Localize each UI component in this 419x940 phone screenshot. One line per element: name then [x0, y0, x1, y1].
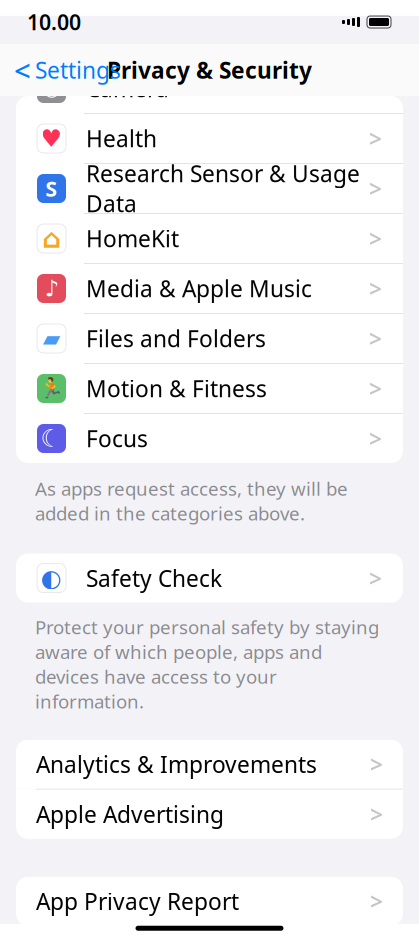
- staticText: HomeKit: [86, 223, 179, 253]
- staticText: ▰: [43, 326, 60, 351]
- staticText: >: [369, 173, 382, 203]
- staticText: >: [370, 749, 383, 779]
- button[interactable]: ◉: [16, 64, 403, 113]
- button[interactable]: Analytics & Improvements: [16, 740, 403, 789]
- button[interactable]: App Privacy Report: [16, 877, 403, 926]
- staticText: 🏃: [39, 377, 64, 400]
- staticText: >: [369, 423, 382, 453]
- button[interactable]: S: [16, 164, 403, 213]
- button[interactable]: ♪: [16, 264, 403, 313]
- staticText: App Privacy Report: [36, 886, 239, 916]
- staticText: <: [14, 50, 31, 89]
- staticText: >: [369, 223, 382, 253]
- staticText: ◉: [43, 77, 60, 100]
- staticText: ◐: [41, 564, 62, 592]
- staticText: Camera: [86, 73, 169, 103]
- staticText: Files and Folders: [86, 323, 266, 353]
- staticText: ♪: [44, 276, 58, 301]
- button[interactable]: ☾: [16, 414, 403, 463]
- staticText: Health: [86, 123, 157, 153]
- staticText: Apple Advertising: [36, 799, 224, 829]
- button[interactable]: 🏃: [16, 364, 403, 413]
- staticText: >: [369, 373, 382, 403]
- button[interactable]: ⌂: [16, 214, 403, 263]
- button[interactable]: ◐: [16, 554, 403, 603]
- staticText: >: [369, 273, 382, 303]
- button[interactable]: <: [4, 48, 131, 92]
- button[interactable]: ▰: [16, 314, 403, 363]
- staticText: Protect your personal safety by staying …: [35, 615, 379, 714]
- staticText: Safety Check: [86, 563, 222, 593]
- staticText: ♥: [40, 125, 62, 152]
- staticText: >: [369, 563, 382, 593]
- staticText: Analytics & Improvements: [36, 749, 317, 779]
- staticText: Privacy & Security: [107, 55, 312, 85]
- staticText: As apps request access, they will be add…: [35, 476, 348, 526]
- staticText: S: [45, 174, 57, 203]
- staticText: Settings: [35, 55, 121, 85]
- staticText: >: [370, 799, 383, 829]
- button[interactable]: ♥: [16, 114, 403, 163]
- button[interactable]: Apple Advertising: [16, 790, 403, 839]
- staticText: >: [370, 886, 383, 916]
- staticText: >: [369, 323, 382, 353]
- staticText: ☾: [40, 425, 62, 452]
- staticText: >: [369, 123, 382, 153]
- staticText: Motion & Fitness: [86, 373, 267, 403]
- staticText: Media & Apple Music: [86, 273, 312, 303]
- staticText: Research Sensor & Usage Data: [86, 158, 360, 219]
- staticText: ⌂: [42, 223, 61, 254]
- staticText: 10.00: [27, 8, 81, 36]
- staticText: Focus: [86, 423, 148, 453]
